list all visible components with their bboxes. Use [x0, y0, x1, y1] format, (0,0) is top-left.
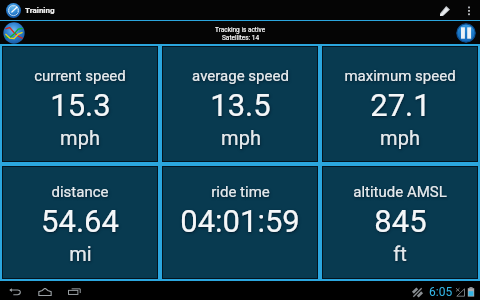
button[interactable]: Edit: [431, 0, 459, 20]
staticText: mi: [69, 242, 92, 265]
button[interactable]: average speed: [163, 47, 317, 161]
button[interactable]: distance: [3, 167, 157, 278]
staticText: 845: [374, 203, 427, 239]
staticText: 54.64: [41, 203, 119, 239]
staticText: mph: [380, 126, 420, 149]
staticText: 15.3: [50, 87, 111, 123]
button[interactable]: Home: [32, 283, 57, 300]
staticText: Tracking is active: [215, 26, 266, 34]
staticText: Satellites: 14: [222, 34, 260, 42]
staticText: 27.1: [370, 87, 431, 123]
button[interactable]: maximum speed: [323, 47, 477, 161]
button[interactable]: Recents: [62, 283, 87, 300]
staticText: ride time: [211, 183, 270, 201]
staticText: altitude AMSL: [353, 183, 447, 201]
button[interactable]: Back: [2, 283, 27, 300]
staticText: average speed: [192, 67, 289, 85]
staticText: current speed: [34, 67, 126, 85]
button[interactable]: current speed: [3, 47, 157, 161]
staticText: Training: [25, 6, 55, 15]
staticText: 13.5: [210, 87, 271, 123]
staticText: ft: [393, 242, 407, 265]
button[interactable]: ride time: [163, 167, 317, 278]
button[interactable]: Pause tracking: [456, 23, 476, 43]
staticText: mph: [60, 126, 100, 149]
staticText: maximum speed: [344, 67, 456, 85]
staticText: 6:05: [429, 285, 453, 299]
staticText: distance: [51, 183, 109, 201]
staticText: 04:01:59: [180, 203, 300, 239]
button[interactable]: More options: [459, 0, 478, 20]
button[interactable]: altitude AMSL: [323, 167, 477, 278]
staticText: mph: [221, 126, 261, 149]
